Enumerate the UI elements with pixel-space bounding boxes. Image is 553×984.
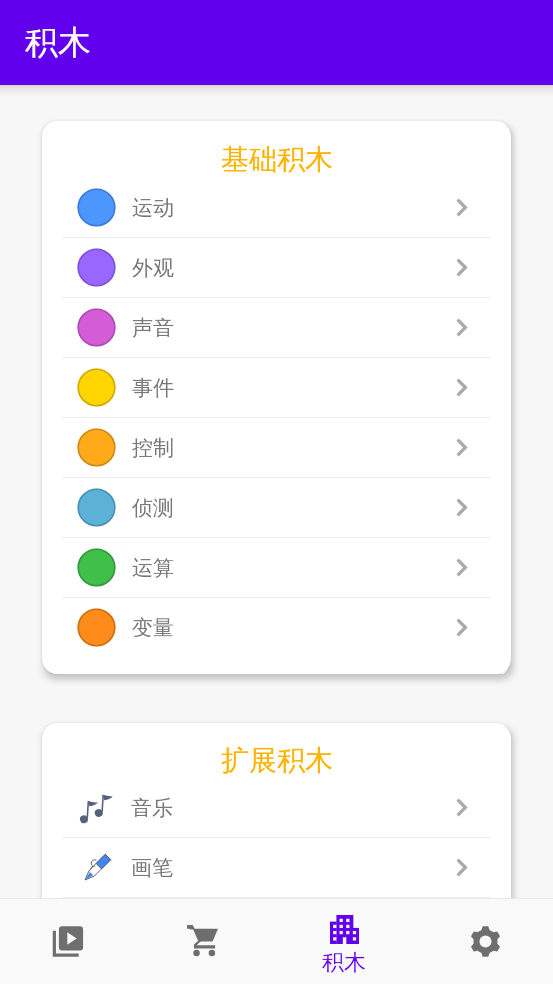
button[interactable]: 变量 <box>42 598 511 657</box>
staticText: 画笔 <box>131 855 173 881</box>
staticText: 积木 <box>322 949 366 977</box>
staticText: 侦测 <box>132 495 174 521</box>
staticText: 事件 <box>132 375 174 401</box>
staticText: 基础积木 <box>221 142 333 177</box>
button[interactable]: 运动 <box>42 178 511 237</box>
staticText: 音乐 <box>131 795 173 821</box>
button[interactable]: 侦测 <box>42 478 511 537</box>
staticText: 变量 <box>132 615 174 641</box>
staticText: 声音 <box>132 315 174 341</box>
button[interactable]: 外观 <box>42 238 511 297</box>
button[interactable]: 画笔 <box>42 838 511 897</box>
button[interactable]: Settings <box>415 899 553 984</box>
button[interactable]: 控制 <box>42 418 511 477</box>
button[interactable]: Shopping cart <box>139 899 277 984</box>
staticText: 运算 <box>132 555 174 581</box>
button[interactable]: 音乐 <box>42 778 511 837</box>
button[interactable]: 声音 <box>42 298 511 357</box>
button[interactable]: Video library <box>0 899 139 984</box>
staticText: 运动 <box>132 195 174 221</box>
staticText: 扩展积木 <box>221 743 333 778</box>
staticText: 积木 <box>25 22 91 64</box>
staticText: 外观 <box>132 255 174 281</box>
staticText: 控制 <box>132 435 174 461</box>
button[interactable]: 积木 <box>277 899 415 984</box>
button[interactable]: 运算 <box>42 538 511 597</box>
button[interactable]: 事件 <box>42 358 511 417</box>
